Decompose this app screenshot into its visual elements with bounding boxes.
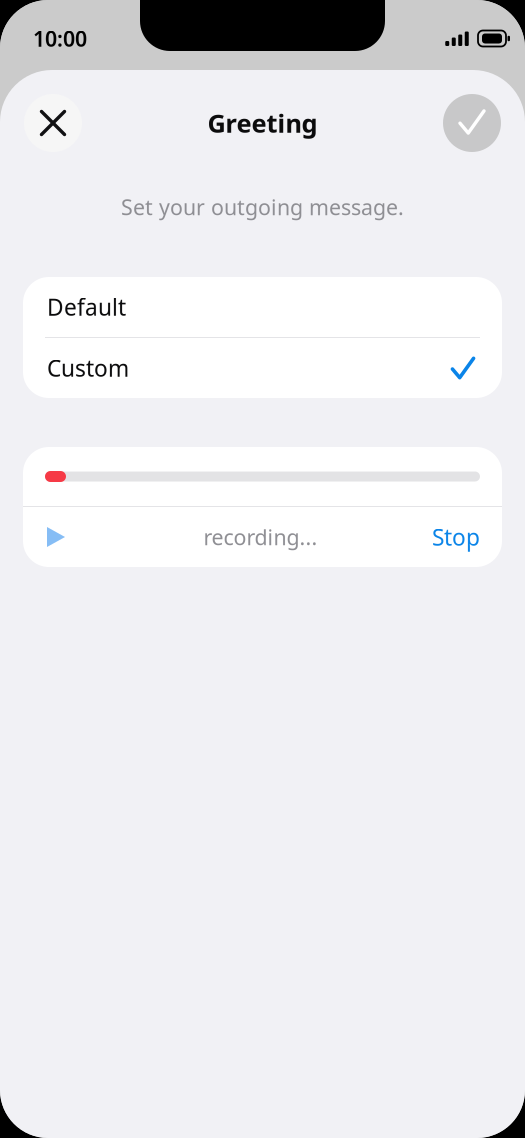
button[interactable]: Save greeting (443, 94, 501, 152)
button[interactable]: Stop (432, 507, 480, 567)
staticText: recording... (203, 523, 317, 551)
staticText: Set your outgoing message. (121, 193, 404, 221)
staticText: Custom (47, 353, 129, 383)
staticText: Default (47, 292, 126, 322)
button[interactable]: Play (47, 507, 89, 567)
staticText: Stop (432, 522, 480, 552)
button[interactable]: Close (24, 94, 82, 152)
staticText: Greeting (207, 106, 317, 140)
staticText: 10:00 (33, 24, 87, 53)
button[interactable]: Custom (23, 338, 502, 398)
button[interactable]: Default (23, 277, 502, 337)
